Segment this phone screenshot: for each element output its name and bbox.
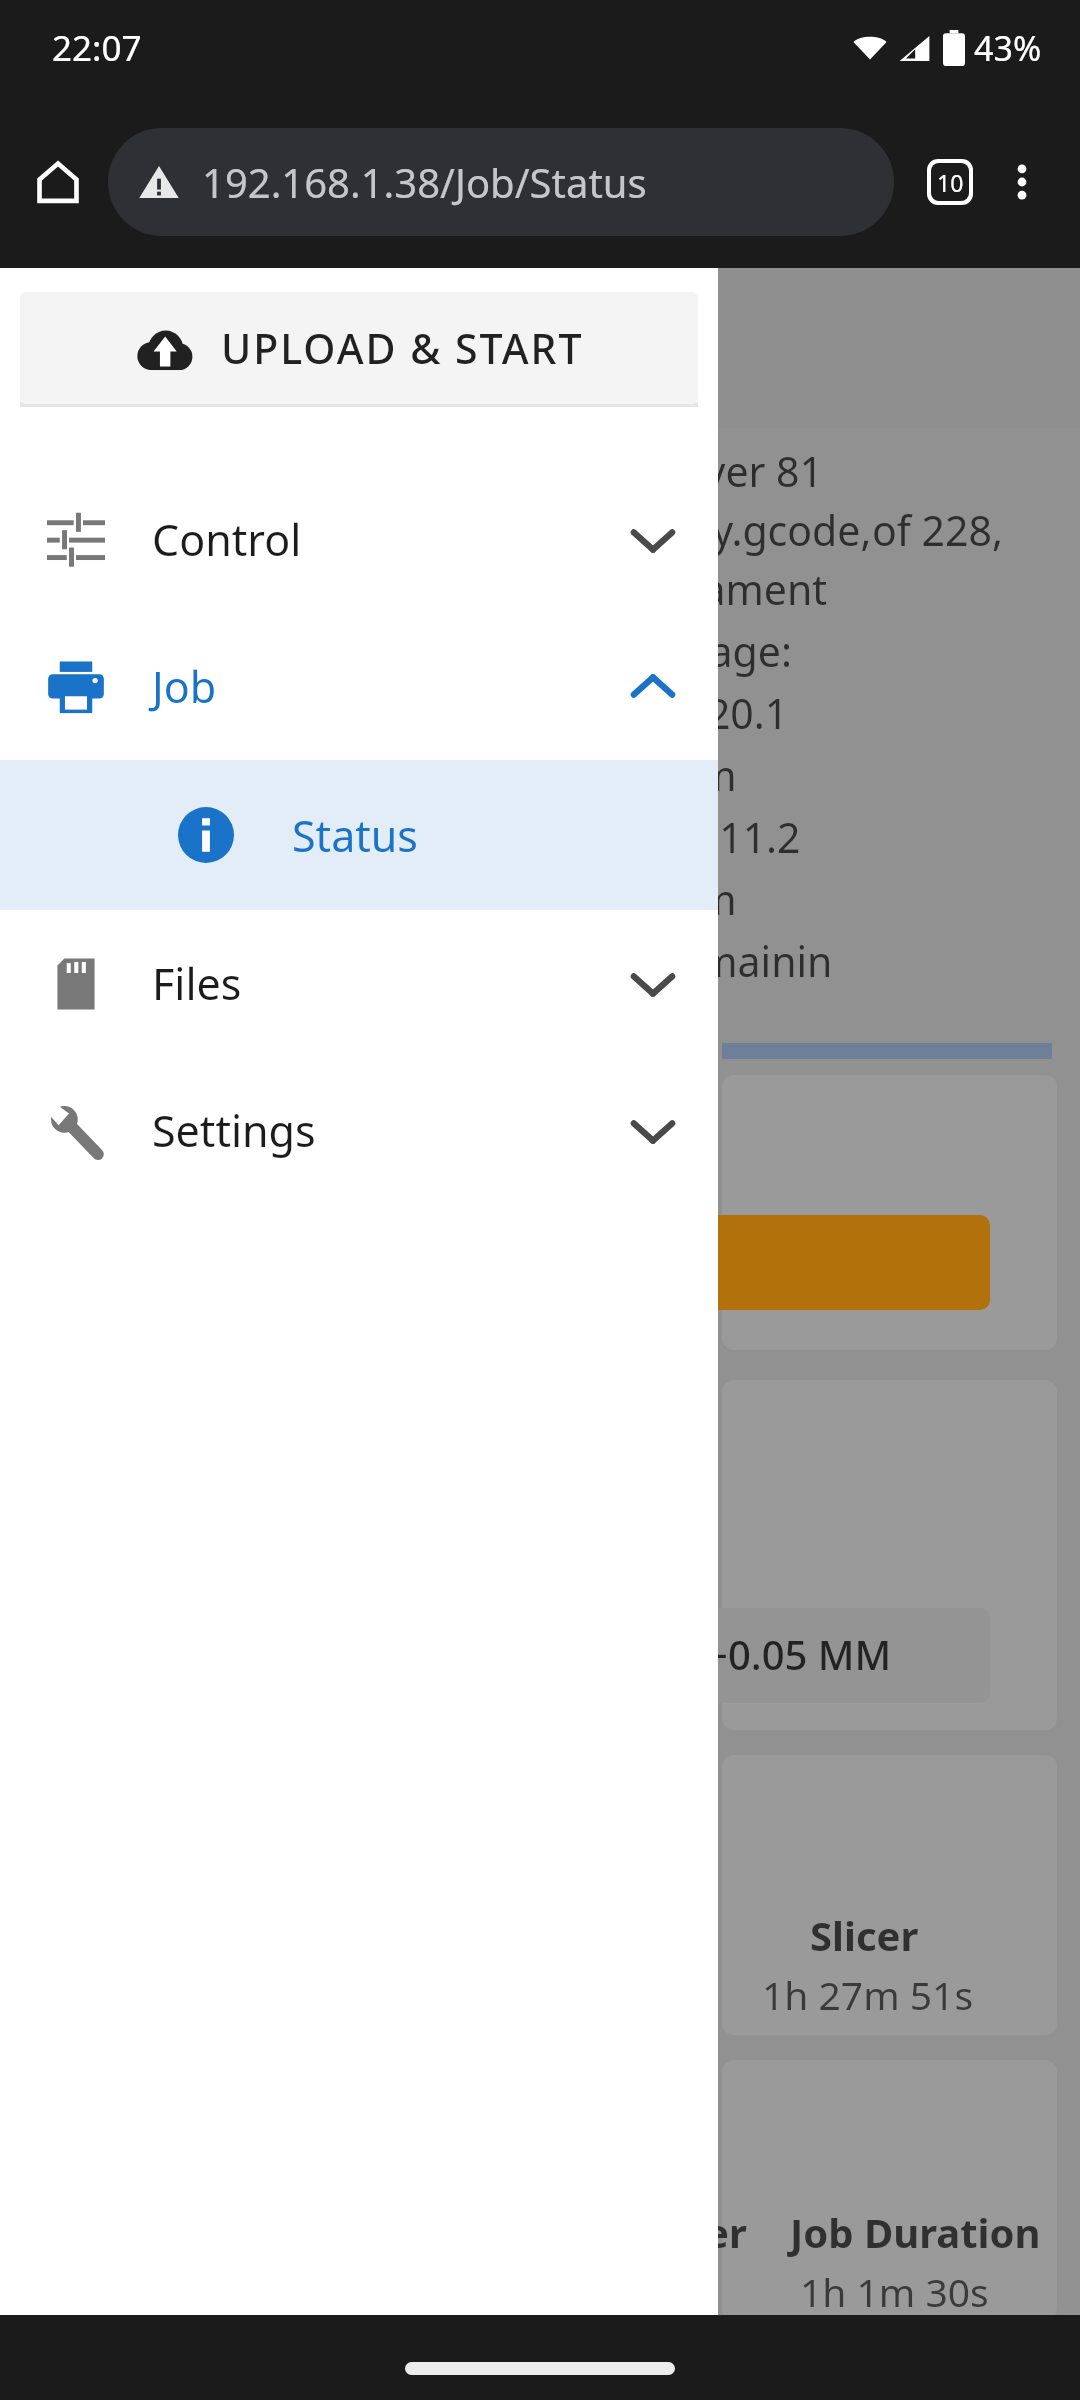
button[interactable]: Files (0, 910, 718, 1057)
staticText: Control (152, 510, 302, 569)
staticText: 22:07 (52, 24, 142, 72)
staticText: Job (152, 657, 217, 716)
staticText: mm (660, 747, 737, 803)
button[interactable]: More options (986, 146, 1058, 218)
staticText: UPLOAD & START (221, 320, 584, 376)
staticText: 43% (974, 25, 1042, 71)
staticText: (5511.2 (660, 809, 801, 865)
staticText: mm (660, 871, 737, 927)
staticText: 192.168.1.38/Job/Status (202, 155, 647, 209)
button[interactable]: Home (22, 146, 94, 218)
staticText: Filament (660, 561, 828, 617)
staticText: er (705, 2205, 747, 2259)
staticText: 1h 27m 51s (762, 1968, 974, 2021)
button[interactable]: Control (0, 466, 718, 613)
button[interactable]: Job (0, 613, 718, 760)
button[interactable]: 192.168.1.38/Job/Status (108, 128, 894, 236)
staticText: icky.gcode, (660, 502, 872, 558)
button[interactable]: Status (0, 760, 718, 910)
button[interactable]: Settings (0, 1057, 718, 1204)
staticText: remainin (660, 933, 833, 989)
staticText: Slicer (810, 1908, 919, 1962)
staticText: Job Duration (790, 2205, 1041, 2259)
staticText: +0.05 MM (705, 1627, 892, 1681)
staticText: of 228, (872, 502, 1003, 558)
staticText: Layer 81 (660, 443, 824, 499)
staticText: Status (292, 806, 418, 865)
staticText: Files (152, 954, 242, 1013)
button[interactable]: Tabs, 10 open (914, 146, 986, 218)
staticText: 1h 1m 30s (800, 2265, 989, 2318)
staticText: Settings (152, 1101, 316, 1160)
button[interactable]: UPLOAD & START (20, 292, 698, 404)
staticText: 4020.1 (660, 685, 789, 741)
staticText: 10 (937, 167, 964, 198)
staticText: Usage: (660, 623, 792, 679)
